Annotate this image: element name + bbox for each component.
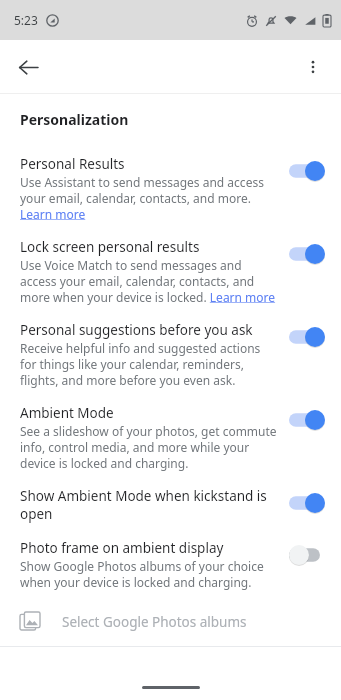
staticText: Photo frame on ambient display (20, 539, 224, 557)
staticText: Show Ambient Mode when kickstand is open (20, 487, 277, 523)
staticText: See a slideshow of your photos, get comm… (20, 423, 277, 471)
button[interactable]: Select Google Photos albums (0, 604, 341, 646)
staticText: Personalization (20, 110, 129, 129)
staticText: Show Google Photos albums of your choice… (20, 558, 277, 590)
button[interactable]: Back (8, 47, 48, 87)
staticText: Ambient Mode (20, 404, 114, 422)
button[interactable]: Show Ambient Mode when kickstand is open (0, 487, 341, 523)
button[interactable]: More options (293, 47, 333, 87)
staticText: Personal suggestions before you ask (20, 321, 253, 339)
button[interactable]: Ambient Mode (0, 404, 341, 471)
staticText: 5:23 (14, 12, 38, 28)
button[interactable]: Lock screen personal results (0, 238, 341, 305)
staticText: Lock screen personal results (20, 238, 200, 256)
staticText: Receive helpful info and suggested actio… (20, 340, 277, 388)
staticText: Use Voice Match to send messages and acc… (20, 257, 277, 305)
staticText: Use Assistant to send messages and acces… (20, 174, 277, 222)
button[interactable]: Personal Results (0, 155, 341, 222)
staticText: Select Google Photos albums (62, 613, 247, 631)
button[interactable]: Personal suggestions before you ask (0, 321, 341, 388)
button[interactable]: Photo frame on ambient display (0, 539, 341, 590)
staticText: Personal Results (20, 155, 125, 173)
